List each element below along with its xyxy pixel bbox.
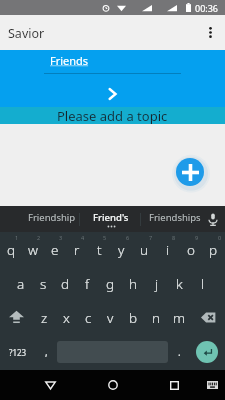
button[interactable]: Please add a topic — [0, 107, 225, 124]
button[interactable]: More options — [195, 15, 225, 50]
staticText: f — [85, 275, 90, 293]
staticText: v — [107, 309, 114, 327]
button[interactable]: k — [168, 266, 191, 300]
button[interactable]: 4 — [66, 232, 88, 266]
button[interactable]: n — [145, 300, 168, 334]
button[interactable]: g — [99, 266, 122, 300]
staticText: 2 — [37, 234, 41, 241]
button[interactable]: j — [145, 266, 168, 300]
button[interactable]: 0 — [202, 232, 225, 266]
button[interactable]: 2 — [22, 232, 44, 266]
staticText: 4 — [81, 234, 85, 241]
staticText: Savior — [8, 25, 45, 42]
staticText: . — [178, 345, 181, 359]
button[interactable]: l — [191, 266, 214, 300]
button[interactable]: x — [55, 300, 77, 334]
button[interactable]: 7 — [133, 232, 156, 266]
button[interactable]: a — [10, 266, 32, 300]
staticText: q — [7, 241, 16, 259]
staticText: g — [106, 275, 115, 293]
staticText: 00:36 — [195, 2, 219, 14]
button[interactable]: 9 — [179, 232, 202, 266]
button[interactable]: Backspace — [191, 300, 225, 334]
button[interactable]: z — [33, 300, 55, 334]
staticText: 5 — [103, 234, 107, 241]
button[interactable]: Back — [36, 370, 64, 400]
button[interactable]: h — [122, 266, 145, 300]
staticText: j — [155, 275, 159, 293]
button[interactable]: d — [54, 266, 76, 300]
staticText: l — [201, 275, 205, 293]
staticText: , — [45, 345, 48, 359]
staticText: 8 — [172, 234, 176, 241]
button[interactable]: 6 — [110, 232, 133, 266]
staticText: d — [61, 275, 70, 293]
staticText: b — [129, 309, 138, 327]
button[interactable]: Add — [176, 158, 204, 186]
staticText: ?123 — [9, 347, 27, 358]
staticText: h — [129, 275, 138, 293]
staticText: k — [176, 275, 183, 293]
staticText: 1 — [15, 234, 19, 241]
staticText: 6 — [126, 234, 130, 241]
button[interactable]: Enter — [196, 341, 218, 363]
staticText: s — [40, 275, 47, 293]
staticText: Friendships — [149, 211, 201, 224]
button[interactable]: Switch keyboard — [200, 370, 224, 400]
staticText: e — [51, 241, 59, 259]
staticText: t — [97, 241, 102, 259]
button[interactable]: 5 — [88, 232, 110, 266]
button[interactable]: 3 — [44, 232, 66, 266]
button[interactable]: Friend's — [81, 206, 141, 232]
button[interactable]: Friendships — [142, 206, 207, 232]
button[interactable]: Friendship — [14, 206, 90, 232]
staticText: i — [166, 241, 170, 259]
button[interactable]: Friends — [44, 52, 181, 74]
staticText: o — [187, 241, 195, 259]
button[interactable]: . — [169, 334, 189, 370]
button[interactable]: Home — [99, 370, 127, 400]
button[interactable]: ?123 — [0, 334, 36, 370]
button[interactable]: v — [99, 300, 122, 334]
staticText: w — [28, 241, 38, 259]
staticText: z — [41, 309, 48, 327]
staticText: a — [17, 275, 25, 293]
button[interactable]: f — [76, 266, 99, 300]
staticText: u — [140, 241, 149, 259]
staticText: Please add a topic — [57, 107, 168, 124]
button[interactable]: Shift — [0, 300, 33, 334]
staticText: Friendship — [28, 211, 76, 224]
staticText: x — [63, 309, 70, 327]
staticText: c — [85, 309, 92, 327]
button[interactable]: c — [77, 300, 99, 334]
staticText: 9 — [195, 234, 199, 241]
button[interactable]: b — [122, 300, 145, 334]
staticText: y — [118, 241, 125, 259]
button[interactable]: Next — [100, 82, 124, 106]
button[interactable]: s — [32, 266, 54, 300]
staticText: 0 — [218, 234, 222, 241]
button[interactable]: Voice input — [201, 206, 225, 232]
staticText: m — [173, 309, 186, 327]
button[interactable]: Recents — [160, 370, 188, 400]
button[interactable]: m — [168, 300, 191, 334]
button[interactable]: 8 — [156, 232, 179, 266]
staticText: 7 — [149, 234, 153, 241]
button[interactable]: , — [36, 334, 56, 370]
staticText: p — [209, 241, 218, 259]
staticText: 3 — [59, 234, 63, 241]
staticText: r — [74, 241, 80, 259]
button[interactable]: 1 — [0, 232, 22, 266]
staticText: Friends — [50, 53, 89, 68]
staticText: Friend's — [93, 211, 129, 224]
staticText: n — [152, 309, 161, 327]
